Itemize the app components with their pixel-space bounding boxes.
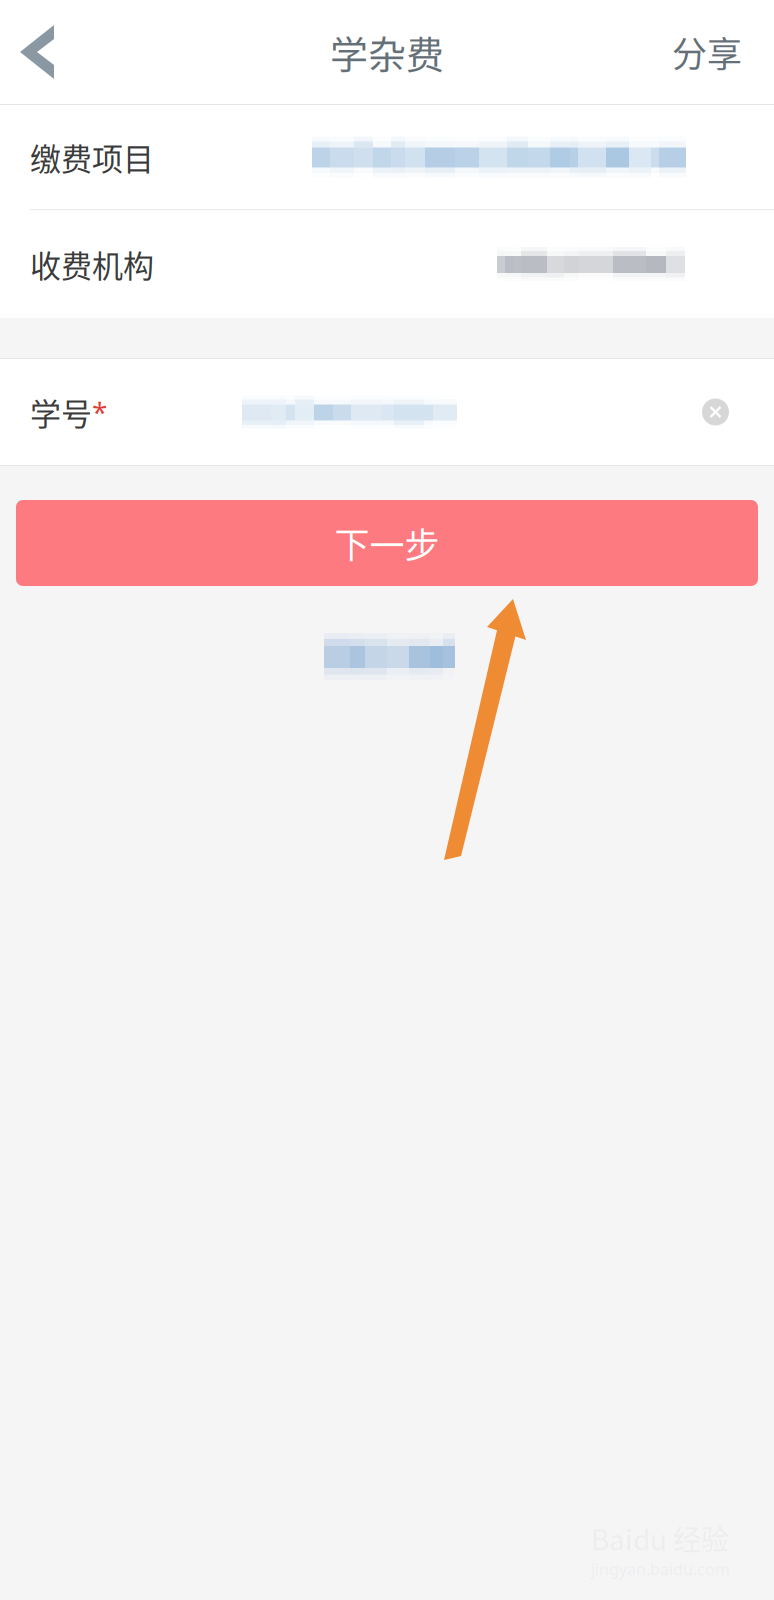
staticText: 下一步 [334, 518, 439, 568]
staticText: * [92, 393, 107, 431]
staticText: 收费机构 [30, 242, 154, 286]
button[interactable]: 分享 [646, 0, 774, 104]
staticText: 学号 [30, 390, 92, 434]
button[interactable]: 清除 [702, 398, 729, 425]
staticText: 缴费项目 [30, 135, 154, 179]
button[interactable]: 返回 [0, 0, 110, 104]
staticText: 学杂费 [330, 24, 444, 79]
staticText: 分享 [672, 27, 742, 77]
button[interactable]: 下一步 [16, 500, 758, 586]
